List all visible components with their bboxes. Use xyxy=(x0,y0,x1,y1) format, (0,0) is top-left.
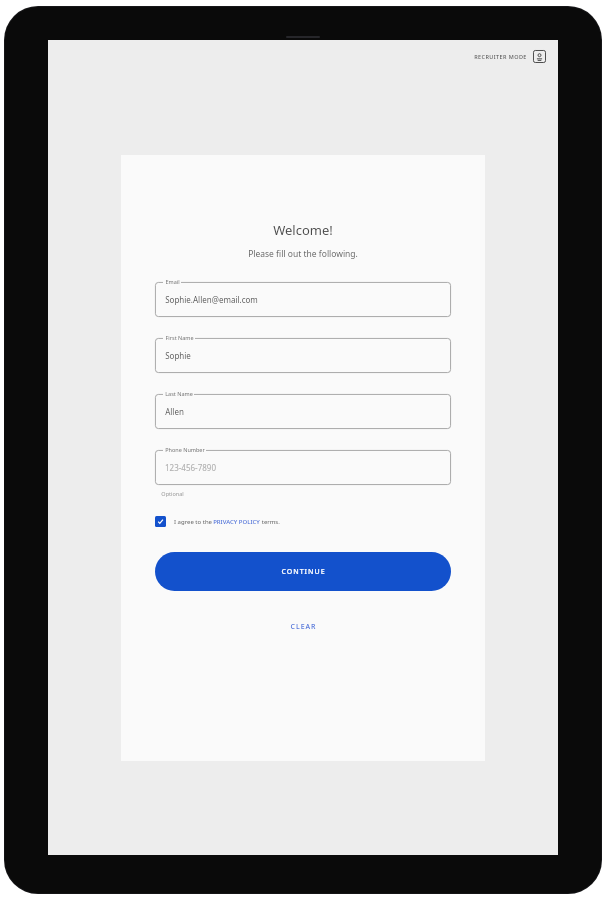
button[interactable]: CONTINUE xyxy=(155,552,451,591)
staticText: CLEAR xyxy=(290,622,317,632)
button[interactable]: I agree to the xyxy=(155,513,451,530)
button[interactable]: Email xyxy=(155,282,451,317)
staticText: Email xyxy=(165,278,180,285)
staticText: Sophie.Allen@email.com xyxy=(165,294,258,305)
button[interactable]: CLEAR xyxy=(276,616,331,638)
staticText: PRIVACY POLICY xyxy=(213,518,260,526)
staticText: RECRUITER MODE xyxy=(474,53,527,60)
button[interactable]: Phone Number xyxy=(155,450,451,485)
staticText: terms. xyxy=(260,518,280,526)
staticText: Welcome! xyxy=(273,221,333,239)
staticText: Sophie xyxy=(165,350,191,361)
staticText: Please fill out the following. xyxy=(248,248,358,260)
button[interactable]: RECRUITER MODE xyxy=(470,46,550,67)
staticText: Optional xyxy=(161,490,184,497)
staticText: Allen xyxy=(165,406,184,417)
staticText: Phone Number xyxy=(165,446,205,453)
button[interactable]: Last Name xyxy=(155,394,451,429)
other: Recruiter mode xyxy=(533,50,546,63)
staticText: Last Name xyxy=(165,390,193,397)
staticText: First Name xyxy=(165,334,194,341)
staticText: I agree to the xyxy=(173,518,213,526)
staticText: 123-456-7890 xyxy=(165,462,216,473)
staticText: CONTINUE xyxy=(281,567,326,577)
button[interactable]: First Name xyxy=(155,338,451,373)
